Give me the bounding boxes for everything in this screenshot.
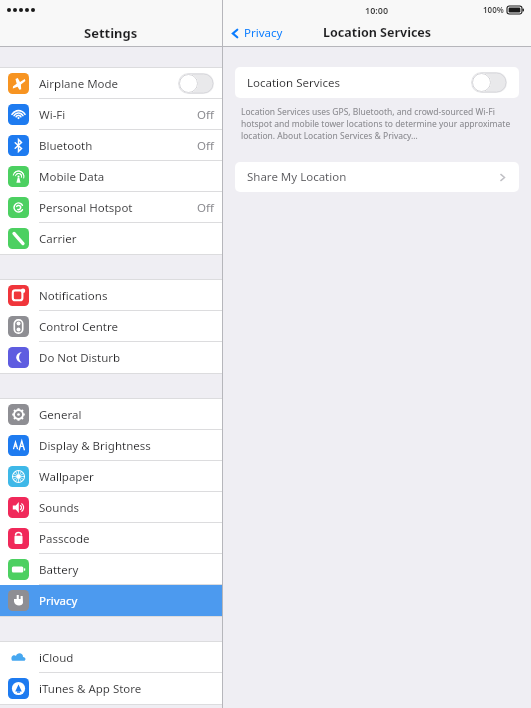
staticText: Settings [84,24,138,42]
staticText: 100% [483,4,504,15]
staticText: Control Centre [39,319,214,335]
button[interactable]: Privacy [230,25,283,41]
button[interactable]: Wi-Fi [0,99,222,130]
staticText: Wallpaper [39,469,214,485]
button[interactable]: Toggle [178,73,214,94]
button[interactable]: Battery [0,554,222,585]
staticText: Off [197,200,214,216]
staticText: Privacy [39,593,214,609]
button[interactable]: Airplane Mode [0,68,222,99]
staticText: Off [197,107,214,123]
staticText: Display & Brightness [39,438,214,454]
staticText: iCloud [39,650,214,666]
button[interactable]: Carrier [0,223,222,254]
button[interactable]: Personal Hotspot [0,192,222,223]
staticText: Bluetooth [39,138,197,154]
button[interactable]: Display & Brightness [0,430,222,461]
button[interactable]: Bluetooth [0,130,222,161]
button[interactable]: Passcode [0,523,222,554]
button[interactable]: General [0,399,222,430]
staticText: General [39,407,214,423]
staticText: Location Services [247,75,471,91]
button[interactable]: Share My Location [235,162,519,192]
staticText: Do Not Disturb [39,350,214,366]
button[interactable]: Privacy [0,585,222,616]
staticText: Off [197,138,214,154]
staticText: Privacy [244,25,283,41]
staticText: Location Services [323,24,432,41]
button[interactable]: Do Not Disturb [0,342,222,373]
staticText: Passcode [39,531,214,547]
button[interactable]: iCloud [0,642,222,673]
staticText: Wi-Fi [39,107,197,123]
button[interactable]: Toggle [471,72,507,93]
staticText: Battery [39,562,214,578]
staticText: Share My Location [247,169,498,185]
staticText: Location Services uses GPS, Bluetooth, a… [241,106,513,142]
staticText: Airplane Mode [39,76,178,92]
staticText: iTunes & App Store [39,681,214,697]
staticText: Notifications [39,288,214,304]
button[interactable]: Mobile Data [0,161,222,192]
button[interactable]: Notifications [0,280,222,311]
staticText: Mobile Data [39,169,214,185]
staticText: Sounds [39,500,214,516]
button[interactable]: iTunes & App Store [0,673,222,704]
button[interactable]: Control Centre [0,311,222,342]
button[interactable]: Location Services [235,67,519,98]
button[interactable]: Sounds [0,492,222,523]
staticText: Carrier [39,231,214,247]
button[interactable]: Wallpaper [0,461,222,492]
staticText: Personal Hotspot [39,200,197,216]
staticText: 10:00 [365,4,389,16]
